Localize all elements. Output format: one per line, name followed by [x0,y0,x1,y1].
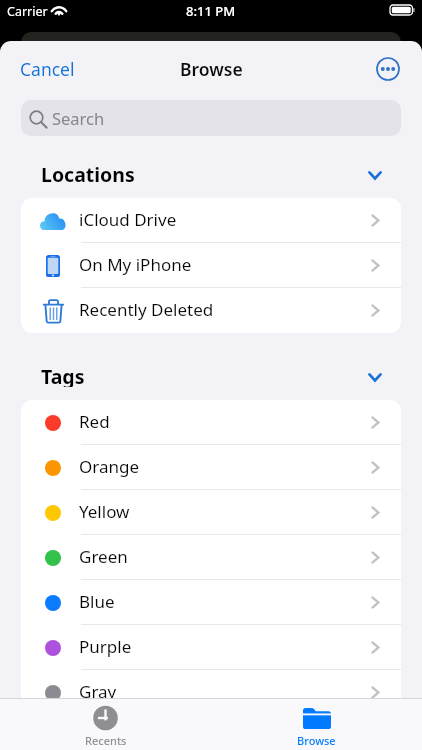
button[interactable]: On My iPhone [21,243,401,288]
staticText: Carrier [7,3,48,20]
staticText: Blue [79,590,115,613]
staticText: Red [79,410,110,433]
staticText: Search [52,107,105,129]
button[interactable]: iCloud Drive [21,198,401,243]
button[interactable]: Recently Deleted [21,288,401,333]
button[interactable]: Search [21,100,401,136]
button[interactable]: Cancel [10,50,85,88]
button[interactable]: Locations [41,163,382,187]
button[interactable]: Browse tab [211,699,422,750]
staticText: iCloud Drive [79,208,177,231]
staticText: Recents [85,733,127,748]
button[interactable]: Red [21,400,401,445]
staticText: Cancel [20,57,75,81]
button[interactable]: Orange [21,445,401,490]
staticText: Green [79,545,128,568]
button[interactable]: Blue [21,580,401,625]
staticText: Purple [79,635,132,658]
staticText: Orange [79,455,140,478]
button[interactable]: Tags [41,365,382,389]
staticText: Yellow [79,500,130,523]
staticText: Locations [41,161,135,185]
staticText: Browse [180,57,243,81]
button[interactable]: More options [371,52,405,86]
button[interactable]: Green [21,535,401,580]
staticText: Gray [79,680,117,703]
staticText: Tags [41,363,85,387]
staticText: Recently Deleted [79,298,214,321]
button[interactable]: Purple [21,625,401,670]
button[interactable]: Yellow [21,490,401,535]
staticText: 8:11 PM [186,2,236,20]
button[interactable]: Gray [21,670,401,715]
staticText: On My iPhone [79,253,192,276]
staticText: Browse [297,733,336,748]
button[interactable]: Recents tab [0,699,211,750]
